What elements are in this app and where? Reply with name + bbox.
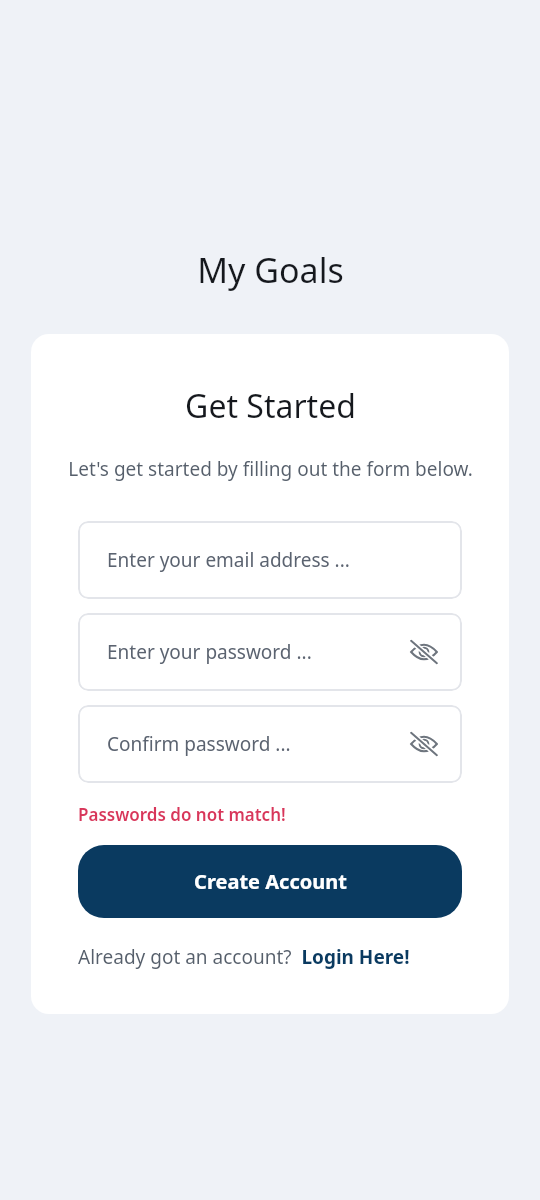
button[interactable]: Already got an account? Login Here!: [78, 944, 462, 970]
button[interactable]: Show password: [408, 636, 440, 668]
staticText: Create Account: [194, 868, 347, 895]
button[interactable]: Create Account: [78, 845, 462, 918]
button[interactable]: Enter your password ...: [78, 613, 462, 691]
button[interactable]: Confirm password ...: [78, 705, 462, 783]
button[interactable]: Show password: [408, 728, 440, 760]
button[interactable]: Enter your email address ...: [78, 521, 462, 599]
staticText: Get Started: [185, 384, 356, 428]
staticText: My Goals: [197, 247, 344, 293]
staticText: Let's get started by filling out the for…: [68, 456, 473, 482]
staticText: Already got an account? Login Here!: [78, 944, 410, 970]
staticText: Enter your email address ...: [107, 547, 440, 573]
staticText: Confirm password ...: [107, 731, 408, 757]
staticText: Enter your password ...: [107, 639, 408, 665]
staticText: Passwords do not match!: [78, 803, 286, 826]
